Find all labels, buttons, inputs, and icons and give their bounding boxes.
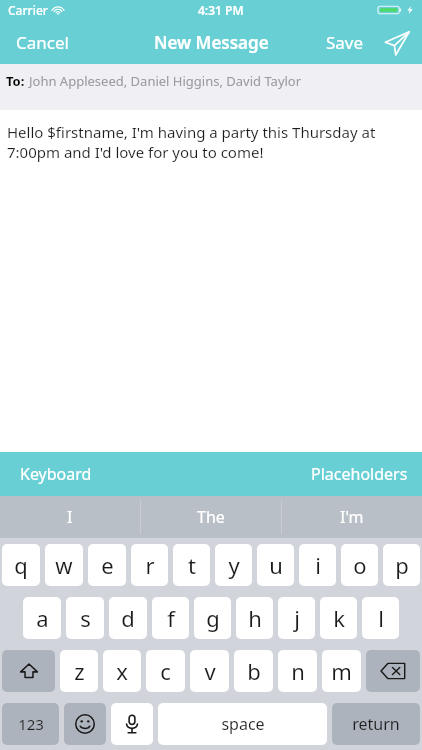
staticText: New Message [154,31,269,54]
staticText: I'm [340,506,364,528]
button[interactable]: f [152,597,189,639]
button[interactable]: l [362,597,399,639]
staticText: t [188,550,196,580]
button[interactable]: return [332,703,420,745]
staticText: return [352,713,400,735]
staticText: l [378,603,384,633]
button[interactable]: Hello $firstname, I'm having a party thi… [0,110,422,452]
staticText: n [291,656,305,686]
button[interactable]: Send [372,22,422,64]
staticText: w [55,550,73,580]
staticText: To: [6,72,25,90]
button[interactable]: d [109,597,147,639]
staticText: j [294,603,300,633]
button[interactable]: The [141,496,281,538]
button[interactable]: j [278,597,315,639]
button[interactable]: g [194,597,231,639]
button[interactable]: Dictate [111,703,153,745]
staticText: g [206,603,220,633]
staticText: f [167,603,175,633]
staticText: z [74,656,85,686]
button[interactable]: v [190,650,229,692]
staticText: x [116,656,128,686]
staticText: e [101,550,114,580]
button[interactable]: k [320,597,357,639]
staticText: Save [326,31,364,54]
button[interactable]: a [23,597,61,639]
button[interactable]: Keyboard [0,453,112,495]
staticText: c [160,656,171,686]
staticText: a [36,603,49,633]
button[interactable]: b [234,650,273,692]
staticText: Carrier [8,2,48,18]
button[interactable]: Shift [2,650,55,692]
button[interactable]: u [257,544,294,586]
staticText: m [331,656,352,686]
staticText: i [315,550,321,580]
staticText: r [145,550,155,580]
button[interactable]: To: [0,64,422,110]
staticText: space [221,713,265,735]
staticText: h [248,603,262,633]
staticText: k [333,603,345,633]
staticText: q [14,550,28,580]
staticText: 123 [18,714,44,734]
staticText: y [228,550,240,580]
staticText: Cancel [16,31,69,54]
button[interactable]: 123 [2,703,59,745]
staticText: p [395,550,409,580]
staticText: v [204,656,216,686]
button[interactable]: m [322,650,361,692]
staticText: s [80,603,91,633]
staticText: I [67,506,73,528]
button[interactable]: t [173,544,210,586]
button[interactable]: o [341,544,378,586]
button[interactable]: h [236,597,273,639]
staticText: Hello $firstname, I'm having a party thi… [7,122,408,162]
button[interactable]: r [131,544,168,586]
button[interactable]: Backspace [366,650,420,692]
staticText: o [353,550,367,580]
button[interactable]: I'm [282,496,422,538]
button[interactable]: p [383,544,420,586]
staticText: The [197,506,225,528]
button[interactable]: I [0,496,140,538]
button[interactable]: s [66,597,104,639]
button[interactable]: n [278,650,317,692]
button[interactable]: y [215,544,252,586]
staticText: Keyboard [20,463,92,485]
button[interactable]: i [299,544,336,586]
button[interactable]: Cancel [0,21,85,64]
staticText: John Appleseed, Daniel Higgins, David Ta… [29,72,302,90]
button[interactable]: Save [318,21,372,64]
button[interactable]: e [88,544,126,586]
staticText: 4:31 PM [198,2,244,18]
button[interactable]: z [60,650,98,692]
staticText: Placeholders [311,463,408,485]
staticText: u [269,550,283,580]
button[interactable]: c [146,650,185,692]
staticText: d [121,603,135,633]
button[interactable]: Placeholders [297,453,422,495]
button[interactable]: q [2,544,40,586]
button[interactable]: Emoji [64,703,106,745]
staticText: b [247,656,261,686]
button[interactable]: w [45,544,83,586]
button[interactable]: x [103,650,141,692]
button[interactable]: space [158,703,327,745]
